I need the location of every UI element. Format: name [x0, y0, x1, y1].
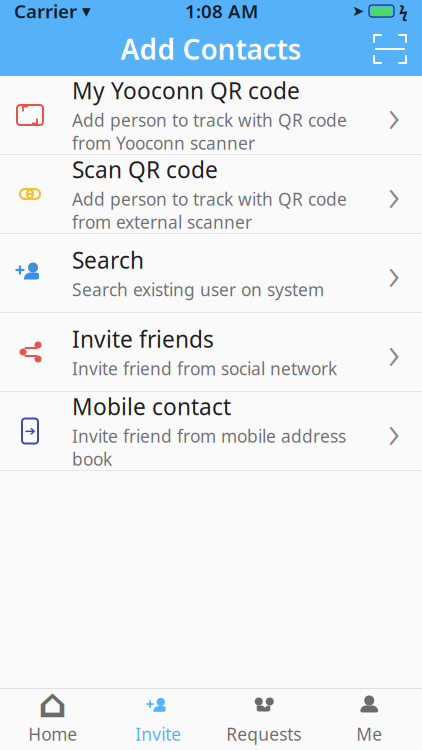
button[interactable]: Search — [0, 234, 422, 313]
staticText: Add person to track with QR code from Yo… — [72, 108, 347, 154]
staticText: Invite friend from mobile address book — [72, 424, 346, 470]
staticText: ⌂ — [38, 681, 67, 726]
staticText: Invite — [135, 722, 181, 745]
staticText: › — [388, 85, 400, 145]
staticText: Me — [356, 722, 382, 745]
button[interactable]: Requests — [211, 689, 316, 749]
staticText: Scan QR code — [72, 154, 218, 184]
staticText: › — [388, 322, 400, 382]
button[interactable]: ⌂ — [0, 689, 105, 749]
staticText: My Yooconn QR code — [72, 75, 300, 105]
staticText: Carrier — [14, 0, 77, 23]
staticText: ➔ — [24, 423, 35, 438]
button[interactable]: ➔ — [0, 392, 422, 471]
button[interactable]: My Yooconn QR code — [0, 76, 422, 155]
staticText: 1:08 AM — [185, 0, 258, 23]
staticText: Search — [72, 245, 144, 275]
staticText: Add person to track with QR code from ex… — [72, 187, 347, 233]
staticText: ϟ — [399, 0, 408, 22]
button[interactable]: Scan QR code — [366, 25, 414, 73]
staticText: Requests — [226, 722, 301, 745]
staticText: Search existing user on system — [72, 278, 324, 301]
staticText: Add Contacts — [120, 30, 301, 68]
staticText: › — [388, 164, 400, 224]
staticText: Invite friends — [72, 324, 214, 354]
staticText: › — [388, 401, 400, 461]
staticText: ➤ — [352, 3, 364, 19]
button[interactable]: Invite — [105, 689, 211, 749]
staticText: › — [388, 243, 400, 303]
button[interactable]: Scan QR code — [0, 155, 422, 234]
staticText: Home — [28, 722, 77, 745]
staticText: ▾ — [82, 1, 91, 21]
button[interactable]: Me — [316, 689, 422, 749]
staticText: Mobile contact — [72, 391, 231, 421]
button[interactable]: Invite friends — [0, 313, 422, 392]
staticText: Invite friend from social network — [72, 357, 337, 380]
